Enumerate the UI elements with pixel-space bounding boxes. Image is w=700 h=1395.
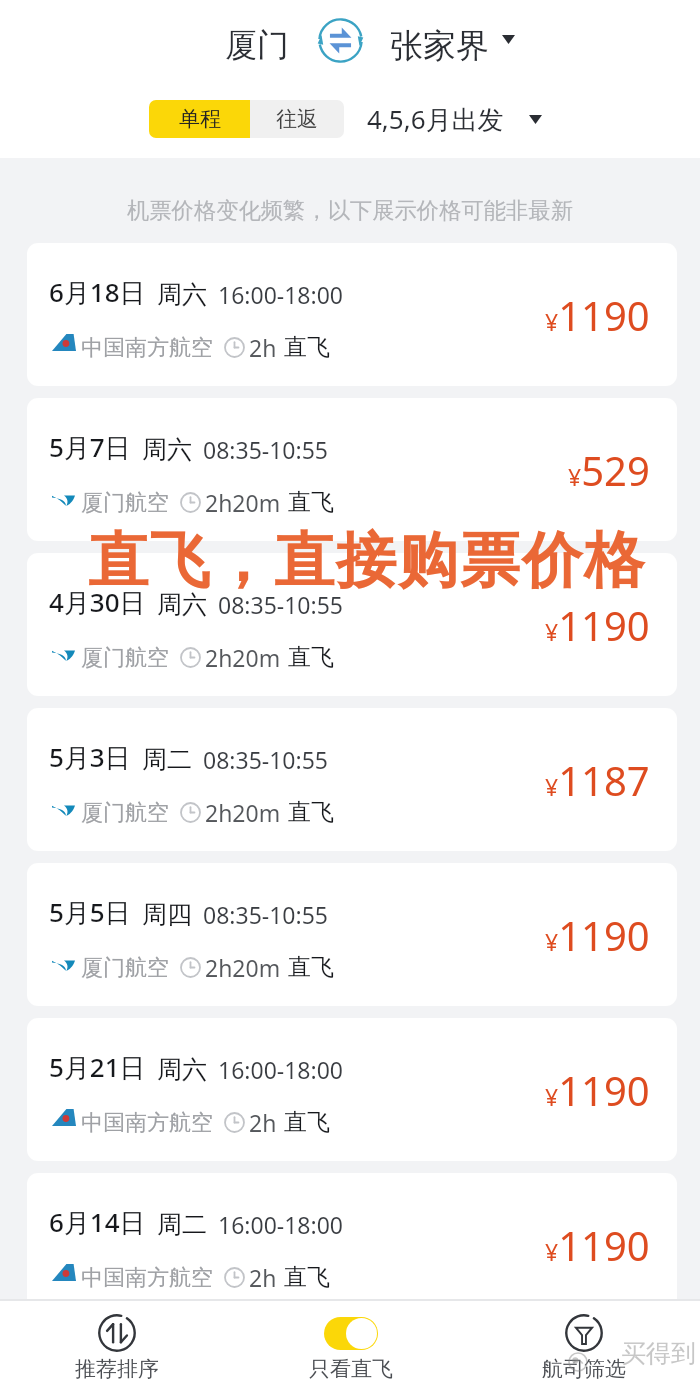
staticText: 厦门航空	[81, 954, 169, 982]
staticText: 08:35-10:55	[203, 899, 328, 930]
staticText: 4月30日	[49, 584, 146, 620]
staticText: ¥1190	[545, 1218, 650, 1272]
button[interactable]: 5月5日	[27, 863, 677, 1006]
staticText: 5月7日	[49, 429, 131, 465]
button[interactable]: 6月14日	[27, 1173, 677, 1316]
button[interactable]: 4月30日	[27, 553, 677, 696]
staticText: 中国南方航空	[81, 1109, 213, 1137]
staticText: 16:00-18:00	[218, 279, 343, 310]
staticText: ¥529	[568, 443, 650, 497]
button[interactable]: Airline filter	[467, 1301, 700, 1395]
staticText: 16:00-18:00	[218, 1209, 343, 1240]
staticText: 直飞	[288, 953, 334, 982]
staticText: 直飞	[284, 1108, 330, 1137]
staticText: 周四	[142, 899, 192, 930]
staticText: 往返	[276, 106, 318, 132]
staticText: 直飞	[288, 643, 334, 672]
staticText: 08:35-10:55	[203, 744, 328, 775]
staticText: 08:35-10:55	[203, 434, 328, 465]
staticText: 厦门航空	[81, 644, 169, 672]
staticText: 2h	[249, 1107, 277, 1138]
staticText: 买得到	[621, 1338, 696, 1369]
staticText: 直飞，直接购票价格	[87, 523, 645, 599]
staticText: 4,5,6月出发	[367, 101, 504, 137]
staticText: 6月18日	[49, 274, 146, 310]
staticText: ¥1190	[545, 288, 650, 342]
staticText: 周二	[157, 1209, 207, 1240]
button[interactable]: 单程	[149, 100, 250, 138]
staticText: 厦门航空	[81, 799, 169, 827]
button[interactable]: 5月21日	[27, 1018, 677, 1161]
staticText: 直飞	[284, 1263, 330, 1292]
button[interactable]: Direct flights only	[234, 1301, 467, 1395]
staticText: 直飞	[288, 488, 334, 517]
staticText: ¥1187	[545, 753, 650, 807]
staticText: 5月21日	[49, 1049, 146, 1085]
staticText: 中国南方航空	[81, 334, 213, 362]
staticText: 厦门	[225, 25, 289, 65]
staticText: 周二	[142, 744, 192, 775]
button[interactable]: 5月3日	[27, 708, 677, 851]
staticText: 6月14日	[49, 1204, 146, 1240]
staticText: 单程	[179, 106, 221, 132]
staticText: 机票价格变化频繁，以下展示价格可能非最新	[127, 197, 573, 225]
staticText: ¥1190	[545, 908, 650, 962]
staticText: 5月5日	[49, 894, 131, 930]
staticText: 周六	[157, 589, 207, 620]
staticText: 直飞	[288, 798, 334, 827]
staticText: 16:00-18:00	[218, 1054, 343, 1085]
staticText: 直飞	[284, 333, 330, 362]
button[interactable]: 4,5,6月出发	[367, 101, 542, 137]
staticText: 08:35-10:55	[218, 589, 343, 620]
staticText: 推荐排序	[75, 1356, 159, 1382]
button[interactable]: 往返	[250, 100, 344, 138]
staticText: 张家界	[390, 25, 489, 67]
staticText: ¥1190	[545, 1063, 650, 1117]
staticText: 2h20m	[205, 487, 281, 518]
staticText: 2h20m	[205, 952, 281, 983]
staticText: 周六	[142, 434, 192, 465]
staticText: 周六	[157, 279, 207, 310]
staticText: 2h	[249, 1262, 277, 1293]
button[interactable]: 5月7日	[27, 398, 677, 541]
staticText: 2h20m	[205, 642, 281, 673]
staticText: 2h	[249, 332, 277, 363]
staticText: 周六	[157, 1054, 207, 1085]
button[interactable]: 6月18日	[27, 243, 677, 386]
staticText: 中国南方航空	[81, 1264, 213, 1292]
staticText: 航司筛选	[542, 1356, 626, 1382]
button[interactable]: Swap cities	[316, 16, 364, 64]
staticText: 厦门航空	[81, 489, 169, 517]
button[interactable]: Sort	[0, 1301, 234, 1395]
staticText: 2h20m	[205, 797, 281, 828]
staticText: ¥1190	[545, 598, 650, 652]
staticText: 只看直飞	[309, 1356, 393, 1382]
staticText: 5月3日	[49, 739, 131, 775]
